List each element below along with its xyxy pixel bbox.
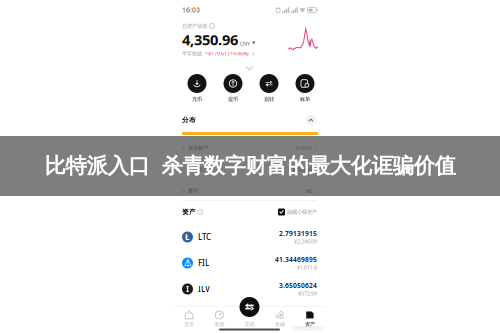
button[interactable]: 充币 [179,74,215,103]
button[interactable]: Collapse distribution [305,114,317,126]
staticText: 充币 [192,96,202,103]
button[interactable]: 交易 [234,310,265,328]
staticText: 资金账户 [188,145,208,151]
staticText: 3.65050624 [279,281,317,290]
staticText: › [315,186,317,196]
staticText: 交易 [244,321,254,328]
staticText: 总资产估值 [182,23,207,29]
staticText: ⏃ [183,259,191,267]
staticText: 资产 [305,321,315,328]
staticText: 分布 [182,116,196,124]
staticText: › [315,164,317,175]
staticText: 发现 [214,321,224,328]
staticText: FIL [198,258,209,268]
staticText: ¥2,346.09 [294,238,317,245]
button[interactable]: 赚币 [174,185,325,197]
staticText: Ł [185,232,190,242]
button[interactable]: 资产 [295,310,325,328]
button[interactable]: 发现 [204,310,234,328]
staticText: 4,350.96 [182,30,238,49]
button[interactable]: 理财账户 [174,163,325,175]
staticText: ▾ [252,39,255,46]
staticText: I [186,284,189,294]
staticText: ¥572.99 [298,290,317,297]
staticText: ¥0 [306,187,312,195]
staticText: 账单 [300,96,310,103]
button[interactable]: Trade [239,297,259,317]
staticText: +¥179.61 (+4.46%) [205,50,249,57]
staticText: 划转 [264,96,274,103]
staticText: 2.79131915 [279,229,317,238]
staticText: 提币 [228,96,238,103]
staticText: ¥1,011.8 [297,264,317,271]
button[interactable]: I [174,279,325,299]
button[interactable]: ⏃ [174,253,325,273]
button[interactable]: Ł [174,227,325,247]
staticText: ¥4,350.95 [289,166,312,173]
button[interactable]: 划转 [251,74,287,103]
button[interactable]: 首页 [174,310,204,328]
staticText: 隐藏小额资产 [287,209,317,215]
staticText: 资产 [182,208,196,216]
staticText: 金融 [275,321,285,328]
button[interactable]: 隐藏小额资产 [278,208,317,215]
staticText: 半年收益 [182,50,202,57]
staticText: ¥<0.01 [296,144,312,152]
button[interactable]: 账单 [287,74,323,103]
staticText: 理财账户 [188,166,208,173]
button[interactable]: 资金账户 [174,142,325,154]
staticText: 赚币 [188,188,198,194]
staticText: 比特派入口 杀青数字财富的最大化诓骗价值 [44,153,455,179]
button[interactable]: 金融 [265,310,295,328]
staticText: LTC [198,232,211,242]
staticText: › [252,48,254,59]
button[interactable]: 提币 [215,74,251,103]
staticText: CNY [240,40,250,47]
staticText: ILV [198,284,210,294]
staticText: 公信股源消息人 [291,325,326,332]
staticText: 16:03 [182,6,200,14]
staticText: › [315,143,317,153]
staticText: 首页 [184,321,194,328]
staticText: 41.34469895 [275,255,317,264]
